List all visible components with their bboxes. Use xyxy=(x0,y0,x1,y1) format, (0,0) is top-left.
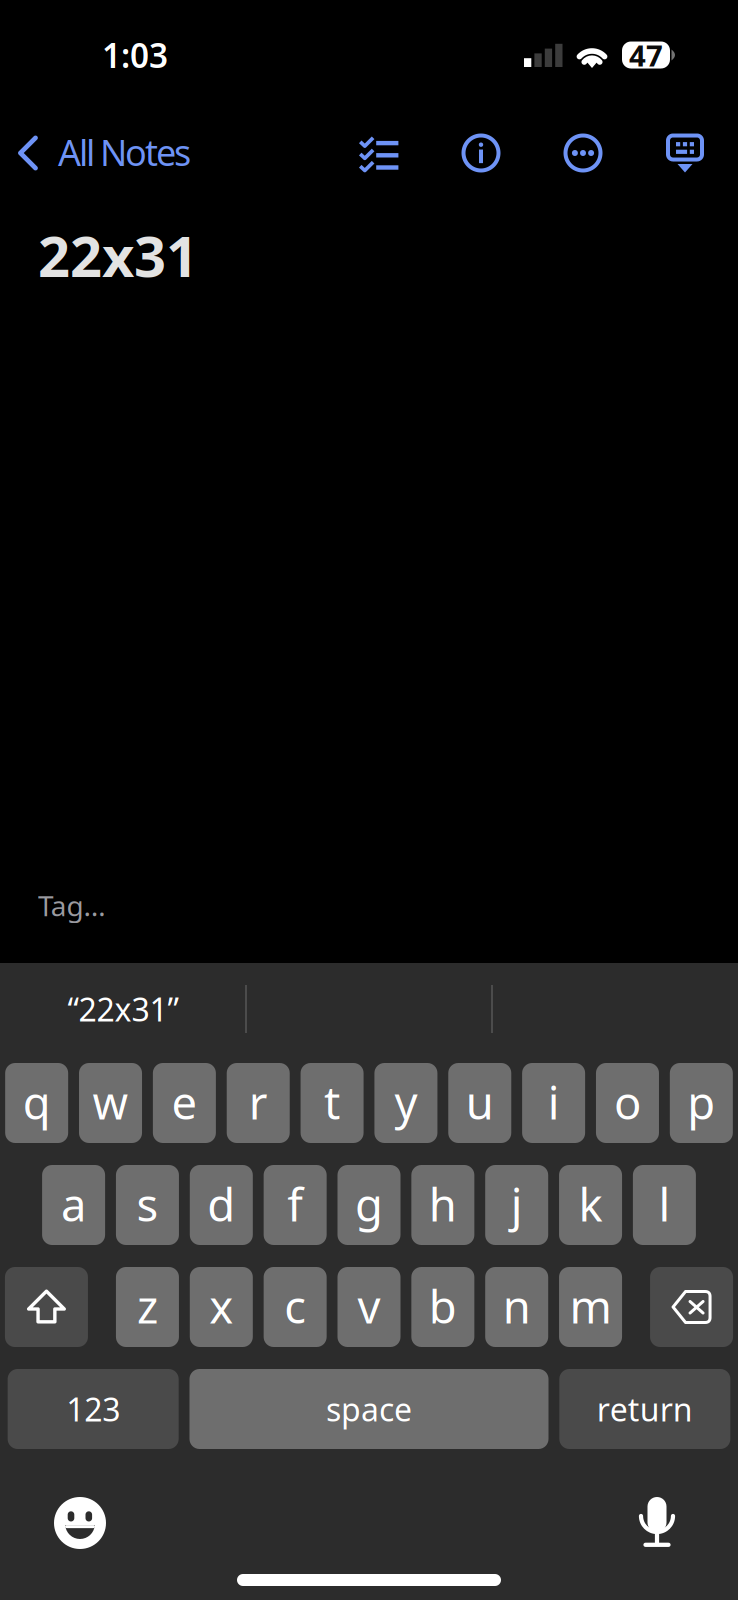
staticText: k xyxy=(579,1174,603,1234)
staticText: u xyxy=(466,1072,494,1132)
staticText: b xyxy=(429,1276,457,1336)
staticText: n xyxy=(503,1276,531,1336)
button[interactable]: a xyxy=(42,1165,105,1245)
button[interactable]: Info xyxy=(447,119,515,187)
button[interactable]: s xyxy=(116,1165,179,1245)
staticText: j xyxy=(511,1174,523,1234)
button[interactable]: Tag… xyxy=(0,887,738,963)
staticText: All Notes xyxy=(58,128,191,176)
button[interactable]: Dictation xyxy=(614,1480,700,1566)
staticText: a xyxy=(61,1174,86,1234)
staticText: v xyxy=(357,1276,380,1336)
button[interactable]: Hide Keyboard xyxy=(651,119,719,187)
staticText: i xyxy=(548,1072,560,1132)
button[interactable]: k xyxy=(559,1165,622,1245)
button[interactable]: 123 xyxy=(8,1369,179,1449)
button[interactable]: e xyxy=(153,1063,216,1143)
button[interactable]: r xyxy=(227,1063,290,1143)
staticText: 22x31 xyxy=(38,218,198,292)
staticText: d xyxy=(207,1174,235,1234)
button[interactable]: i xyxy=(522,1063,585,1143)
staticText: 47 xyxy=(629,35,663,74)
button[interactable]: j xyxy=(485,1165,548,1245)
staticText: return xyxy=(597,1388,693,1430)
button[interactable]: f xyxy=(264,1165,327,1245)
staticText: x xyxy=(209,1276,233,1336)
button[interactable]: x xyxy=(190,1267,253,1347)
staticText: “22x31” xyxy=(67,988,178,1030)
staticText: q xyxy=(23,1072,51,1132)
button[interactable]: m xyxy=(559,1267,622,1347)
staticText: 123 xyxy=(66,1388,120,1430)
button[interactable]: u xyxy=(448,1063,511,1143)
button[interactable] xyxy=(5,1267,88,1347)
staticText: Tag… xyxy=(38,887,105,924)
button[interactable]: Checklist xyxy=(345,119,413,187)
button[interactable]: o xyxy=(596,1063,659,1143)
button[interactable]: n xyxy=(485,1267,548,1347)
button[interactable]: b xyxy=(411,1267,474,1347)
button[interactable]: c xyxy=(264,1267,327,1347)
button[interactable] xyxy=(650,1267,733,1347)
staticText: c xyxy=(284,1276,306,1336)
button[interactable]: More xyxy=(549,119,617,187)
button[interactable]: g xyxy=(337,1165,400,1245)
button[interactable]: y xyxy=(374,1063,437,1143)
staticText: w xyxy=(92,1072,128,1132)
staticText: t xyxy=(324,1072,340,1132)
button[interactable]: p xyxy=(670,1063,733,1143)
staticText: z xyxy=(137,1276,158,1336)
button[interactable]: t xyxy=(301,1063,364,1143)
button[interactable]: v xyxy=(337,1267,400,1347)
button[interactable]: z xyxy=(116,1267,179,1347)
button[interactable]: d xyxy=(190,1165,253,1245)
staticText: g xyxy=(355,1174,383,1234)
staticText: y xyxy=(394,1072,417,1132)
button[interactable]: return xyxy=(559,1369,730,1449)
button[interactable]: “22x31” xyxy=(0,963,246,1055)
button[interactable]: space xyxy=(189,1369,548,1449)
staticText: l xyxy=(658,1174,670,1234)
staticText: m xyxy=(569,1276,611,1336)
staticText: f xyxy=(287,1174,303,1234)
staticText: r xyxy=(249,1072,268,1132)
staticText: p xyxy=(687,1072,715,1132)
button[interactable]: All Notes xyxy=(0,119,191,187)
staticText: space xyxy=(326,1388,412,1430)
staticText: s xyxy=(136,1174,158,1234)
staticText: h xyxy=(429,1174,457,1234)
staticText: 1:03 xyxy=(102,33,168,77)
staticText: e xyxy=(171,1072,197,1132)
staticText: o xyxy=(614,1072,641,1132)
button[interactable]: q xyxy=(5,1063,68,1143)
button[interactable]: 22x31 xyxy=(0,196,738,292)
button[interactable]: h xyxy=(411,1165,474,1245)
button[interactable]: l xyxy=(633,1165,696,1245)
button[interactable]: w xyxy=(79,1063,142,1143)
button[interactable]: Emoji xyxy=(37,1480,123,1566)
